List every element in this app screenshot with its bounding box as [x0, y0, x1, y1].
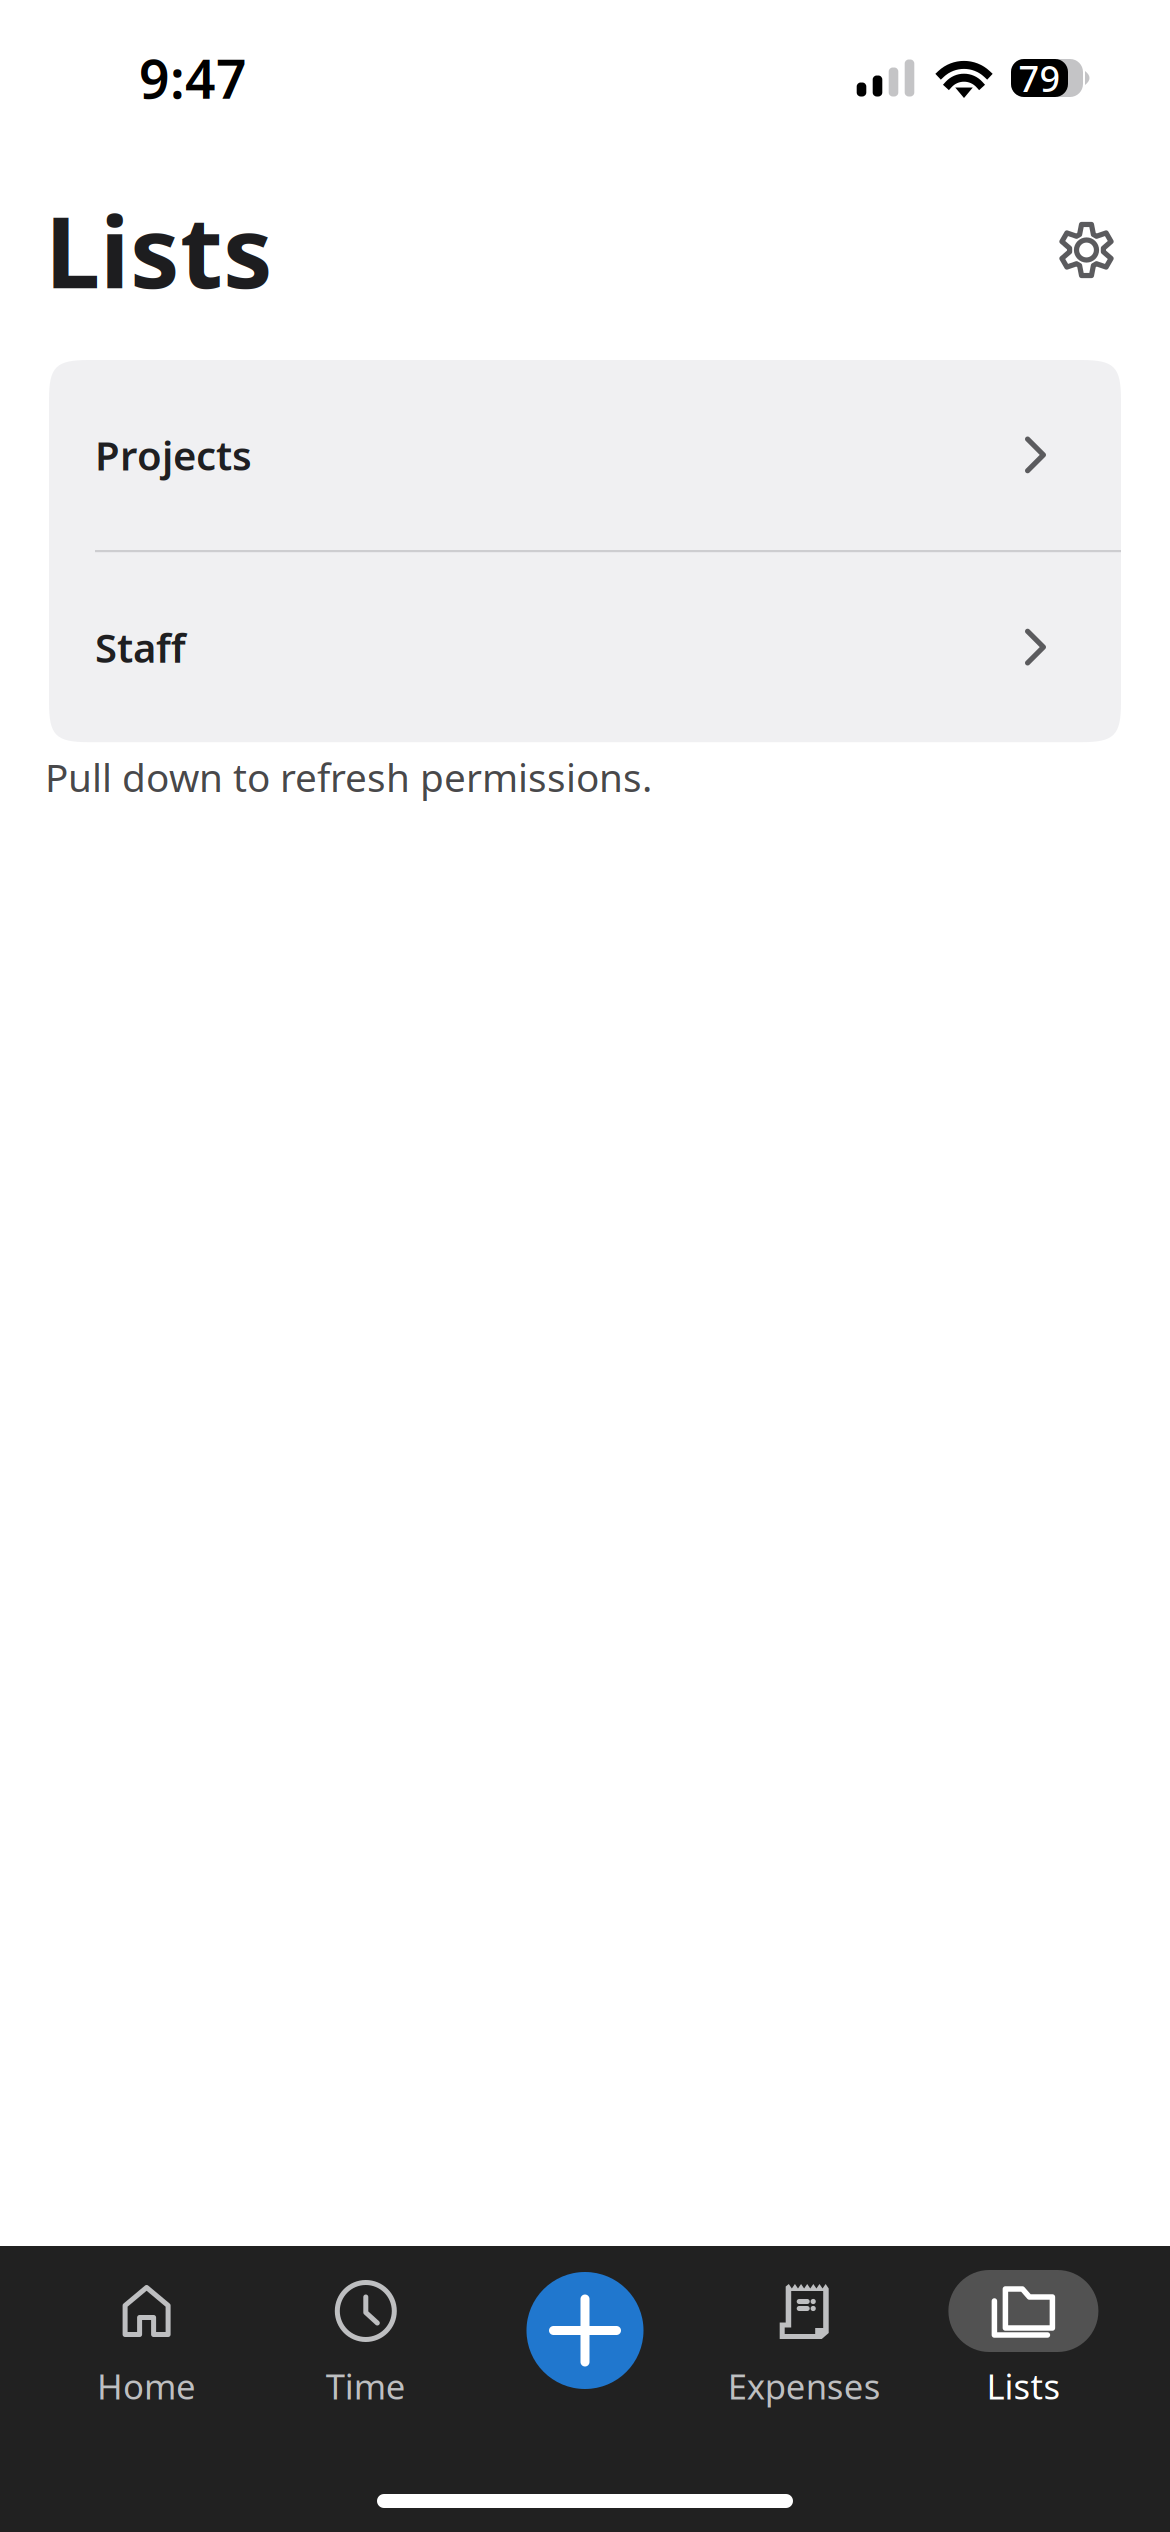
- staticText: Home: [97, 2363, 196, 2409]
- staticText: 79: [1018, 54, 1060, 102]
- button[interactable]: Home: [37, 2246, 256, 2409]
- button[interactable]: Settings: [1047, 210, 1126, 289]
- button[interactable]: Lists: [914, 2246, 1133, 2409]
- staticText: Staff: [95, 621, 186, 674]
- button[interactable]: Add: [475, 2246, 695, 2389]
- staticText: 9:47: [139, 43, 247, 113]
- button[interactable]: Time: [256, 2246, 475, 2409]
- staticText: Expenses: [728, 2363, 881, 2409]
- staticText: Lists: [45, 184, 273, 315]
- staticText: Lists: [986, 2363, 1060, 2409]
- button[interactable]: Staff: [49, 552, 1121, 742]
- staticText: Projects: [95, 428, 252, 481]
- button[interactable]: Expenses: [695, 2246, 914, 2409]
- button[interactable]: Projects: [49, 360, 1121, 550]
- staticText: Pull down to refresh permissions.: [45, 751, 652, 802]
- staticText: Time: [326, 2363, 406, 2409]
